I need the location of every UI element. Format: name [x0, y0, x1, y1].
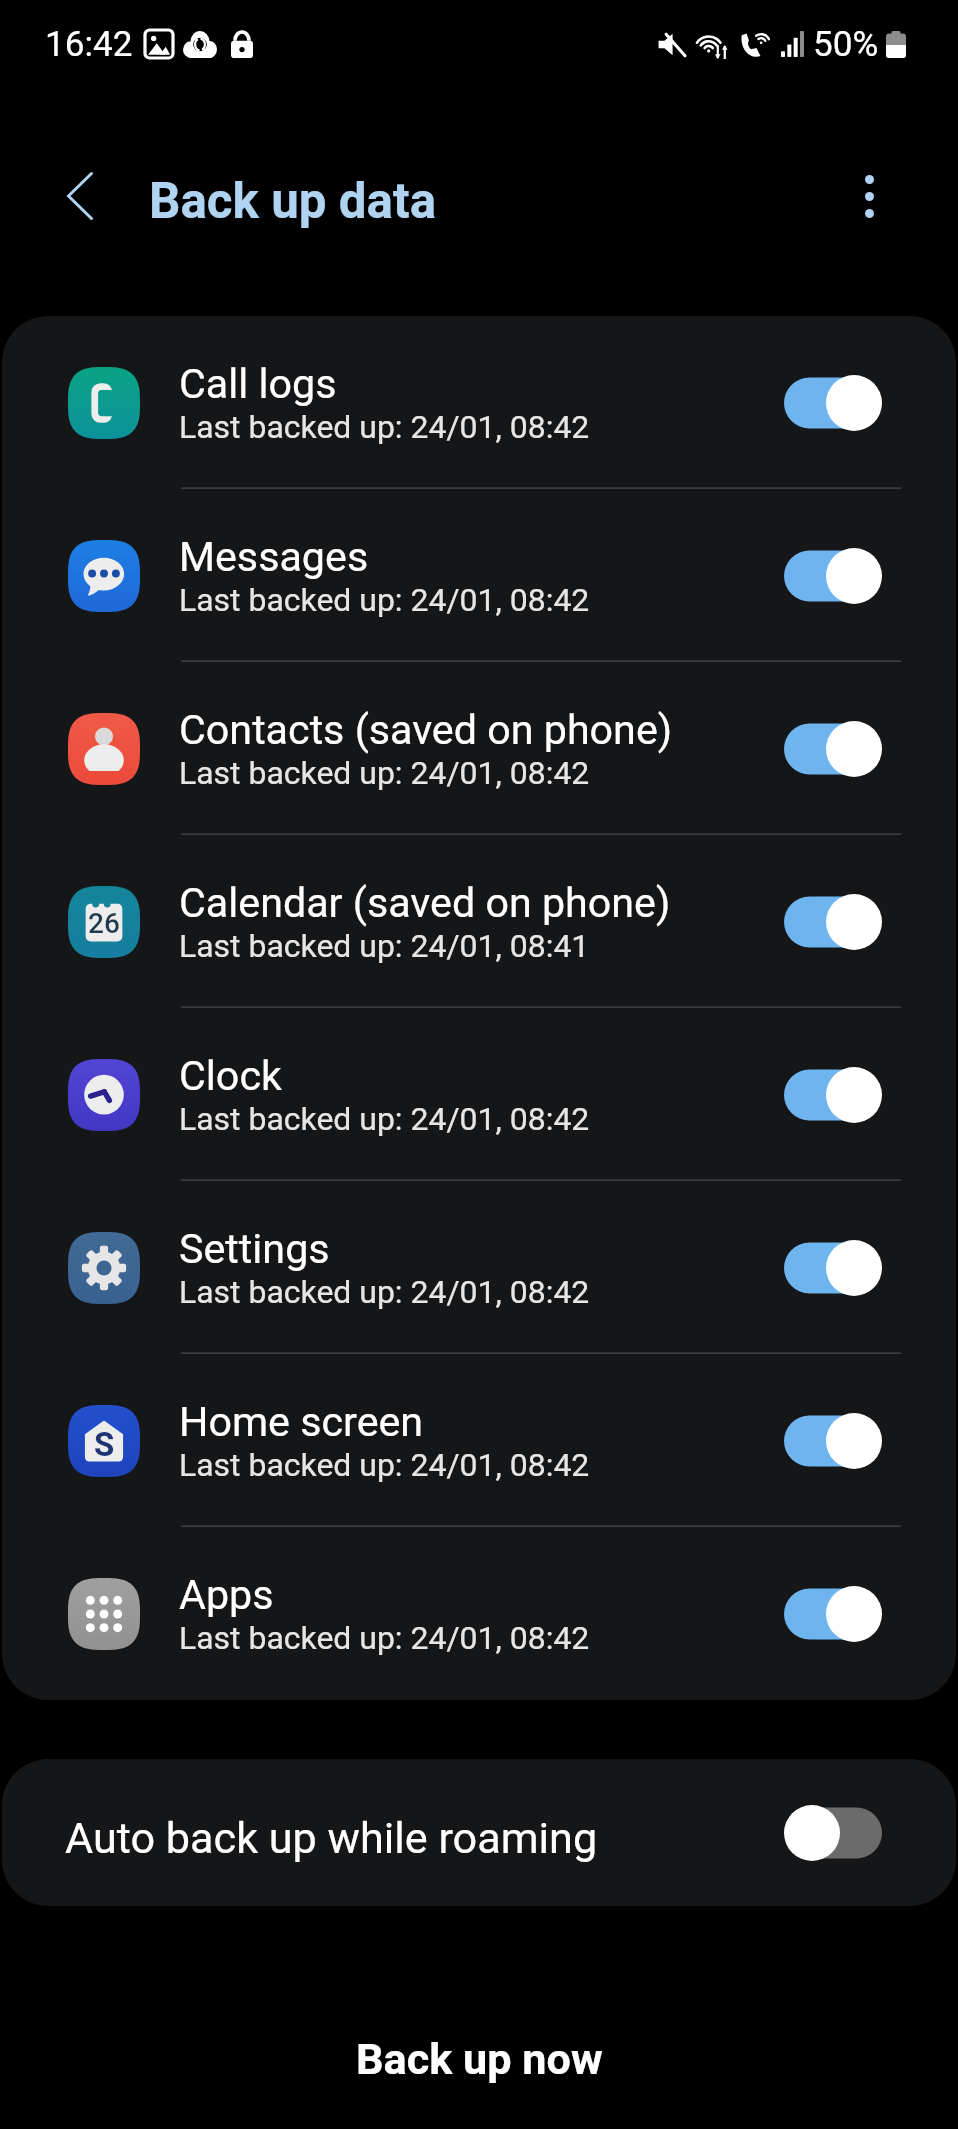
staticText: Last backed up: 24/01, 08:42: [179, 1100, 590, 1137]
button[interactable]: Auto back up while roaming toggle: [784, 1805, 882, 1861]
staticText: S: [94, 1425, 115, 1464]
button[interactable]: Contacts (saved on phone): [2, 662, 956, 835]
button[interactable]: More options: [813, 140, 925, 252]
staticText: Back up data: [149, 172, 437, 230]
button[interactable]: Auto back up while roaming: [2, 1759, 956, 1906]
staticText: Contacts (saved on phone): [179, 706, 673, 754]
staticText: Last backed up: 24/01, 08:42: [179, 1446, 590, 1483]
button[interactable]: Apps: [2, 1527, 956, 1700]
staticText: Back up now: [356, 2034, 603, 2085]
staticText: Settings: [179, 1225, 330, 1273]
button[interactable]: Messages toggle: [784, 548, 882, 604]
staticText: Auto back up while roaming: [65, 1813, 598, 1864]
staticText: Call logs: [179, 360, 337, 408]
staticText: Last backed up: 24/01, 08:41: [179, 927, 590, 964]
button[interactable]: Contacts (saved on phone) toggle: [784, 721, 882, 777]
button[interactable]: Apps toggle: [784, 1586, 882, 1642]
button[interactable]: Call logs toggle: [784, 375, 882, 431]
staticText: 26: [88, 907, 120, 940]
button[interactable]: Clock toggle: [784, 1067, 882, 1123]
button[interactable]: S: [2, 1354, 956, 1527]
staticText: Messages: [179, 533, 369, 581]
staticText: Last backed up: 24/01, 08:42: [179, 581, 590, 618]
button[interactable]: Clock: [2, 1008, 956, 1181]
staticText: Home screen: [179, 1398, 424, 1446]
staticText: Last backed up: 24/01, 08:42: [179, 1619, 590, 1656]
button[interactable]: Messages: [2, 489, 956, 662]
button[interactable]: 26: [2, 835, 956, 1008]
button[interactable]: Calendar (saved on phone) toggle: [784, 894, 882, 950]
button[interactable]: Settings: [2, 1181, 956, 1354]
button[interactable]: Navigate up: [16, 129, 143, 263]
staticText: Last backed up: 24/01, 08:42: [179, 1273, 590, 1310]
staticText: Last backed up: 24/01, 08:42: [179, 408, 590, 445]
staticText: 50%: [813, 23, 879, 64]
button[interactable]: Back up now: [0, 2009, 958, 2109]
button[interactable]: Home screen toggle: [784, 1413, 882, 1469]
staticText: Clock: [179, 1052, 282, 1100]
button[interactable]: Settings toggle: [784, 1240, 882, 1296]
button[interactable]: Call logs: [2, 316, 956, 489]
staticText: 16:42: [45, 23, 133, 64]
staticText: Last backed up: 24/01, 08:42: [179, 754, 590, 791]
staticText: Apps: [179, 1571, 274, 1619]
staticText: Calendar (saved on phone): [179, 879, 671, 927]
